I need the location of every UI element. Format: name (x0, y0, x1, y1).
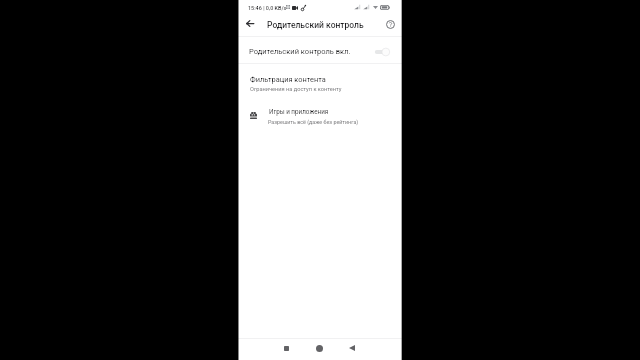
staticText: Ограничения на доступ к контенту (250, 86, 342, 93)
staticText: Фильтрация контента (250, 75, 326, 84)
staticText: Родительский контроль вкл. (249, 47, 351, 56)
button[interactable]: Родительский контроль вкл. (238, 37, 402, 63)
button[interactable]: Home (311, 340, 327, 356)
staticText: Игры и приложения (269, 108, 329, 115)
button[interactable]: Back (344, 340, 360, 356)
button[interactable]: Back (240, 13, 260, 33)
button[interactable]: Help (380, 14, 400, 34)
button[interactable]: Игры и приложения (238, 103, 402, 127)
staticText: Разрешить всё (даже без рейтинга) (268, 119, 359, 125)
staticText: Родительский контроль (267, 20, 364, 30)
staticText: 15:46 | 0,0 KB/s (248, 5, 287, 11)
button[interactable]: Recent apps (278, 340, 294, 356)
